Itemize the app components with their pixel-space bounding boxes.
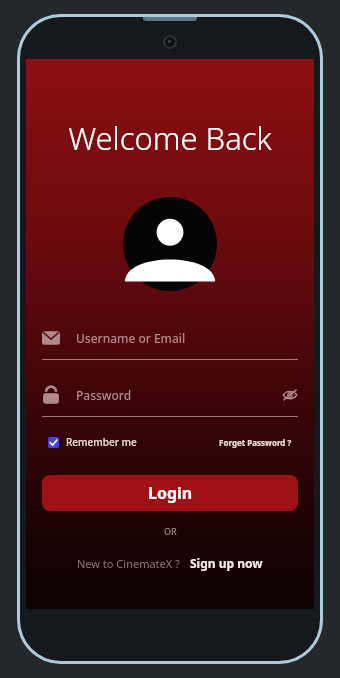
- button[interactable]: Username or Email: [42, 325, 298, 360]
- staticText: Login: [148, 482, 193, 504]
- staticText: OR: [164, 525, 177, 537]
- staticText: Username or Email: [76, 330, 186, 346]
- button[interactable]: Forget Password ?: [219, 437, 292, 448]
- staticText: Remember me: [66, 435, 137, 449]
- button[interactable]: Remember me: [48, 435, 137, 449]
- button[interactable]: Login: [42, 475, 298, 511]
- staticText: New to CinemateX ?: [77, 556, 180, 571]
- staticText: Password: [76, 387, 132, 403]
- staticText: Sign up now: [190, 555, 263, 571]
- button[interactable]: Sign up now: [190, 555, 263, 571]
- staticText: Welcome Back: [68, 117, 272, 159]
- staticText: Forget Password ?: [219, 437, 292, 448]
- button[interactable]: Password: [42, 382, 298, 417]
- button[interactable]: Toggle password visibility: [282, 387, 298, 403]
